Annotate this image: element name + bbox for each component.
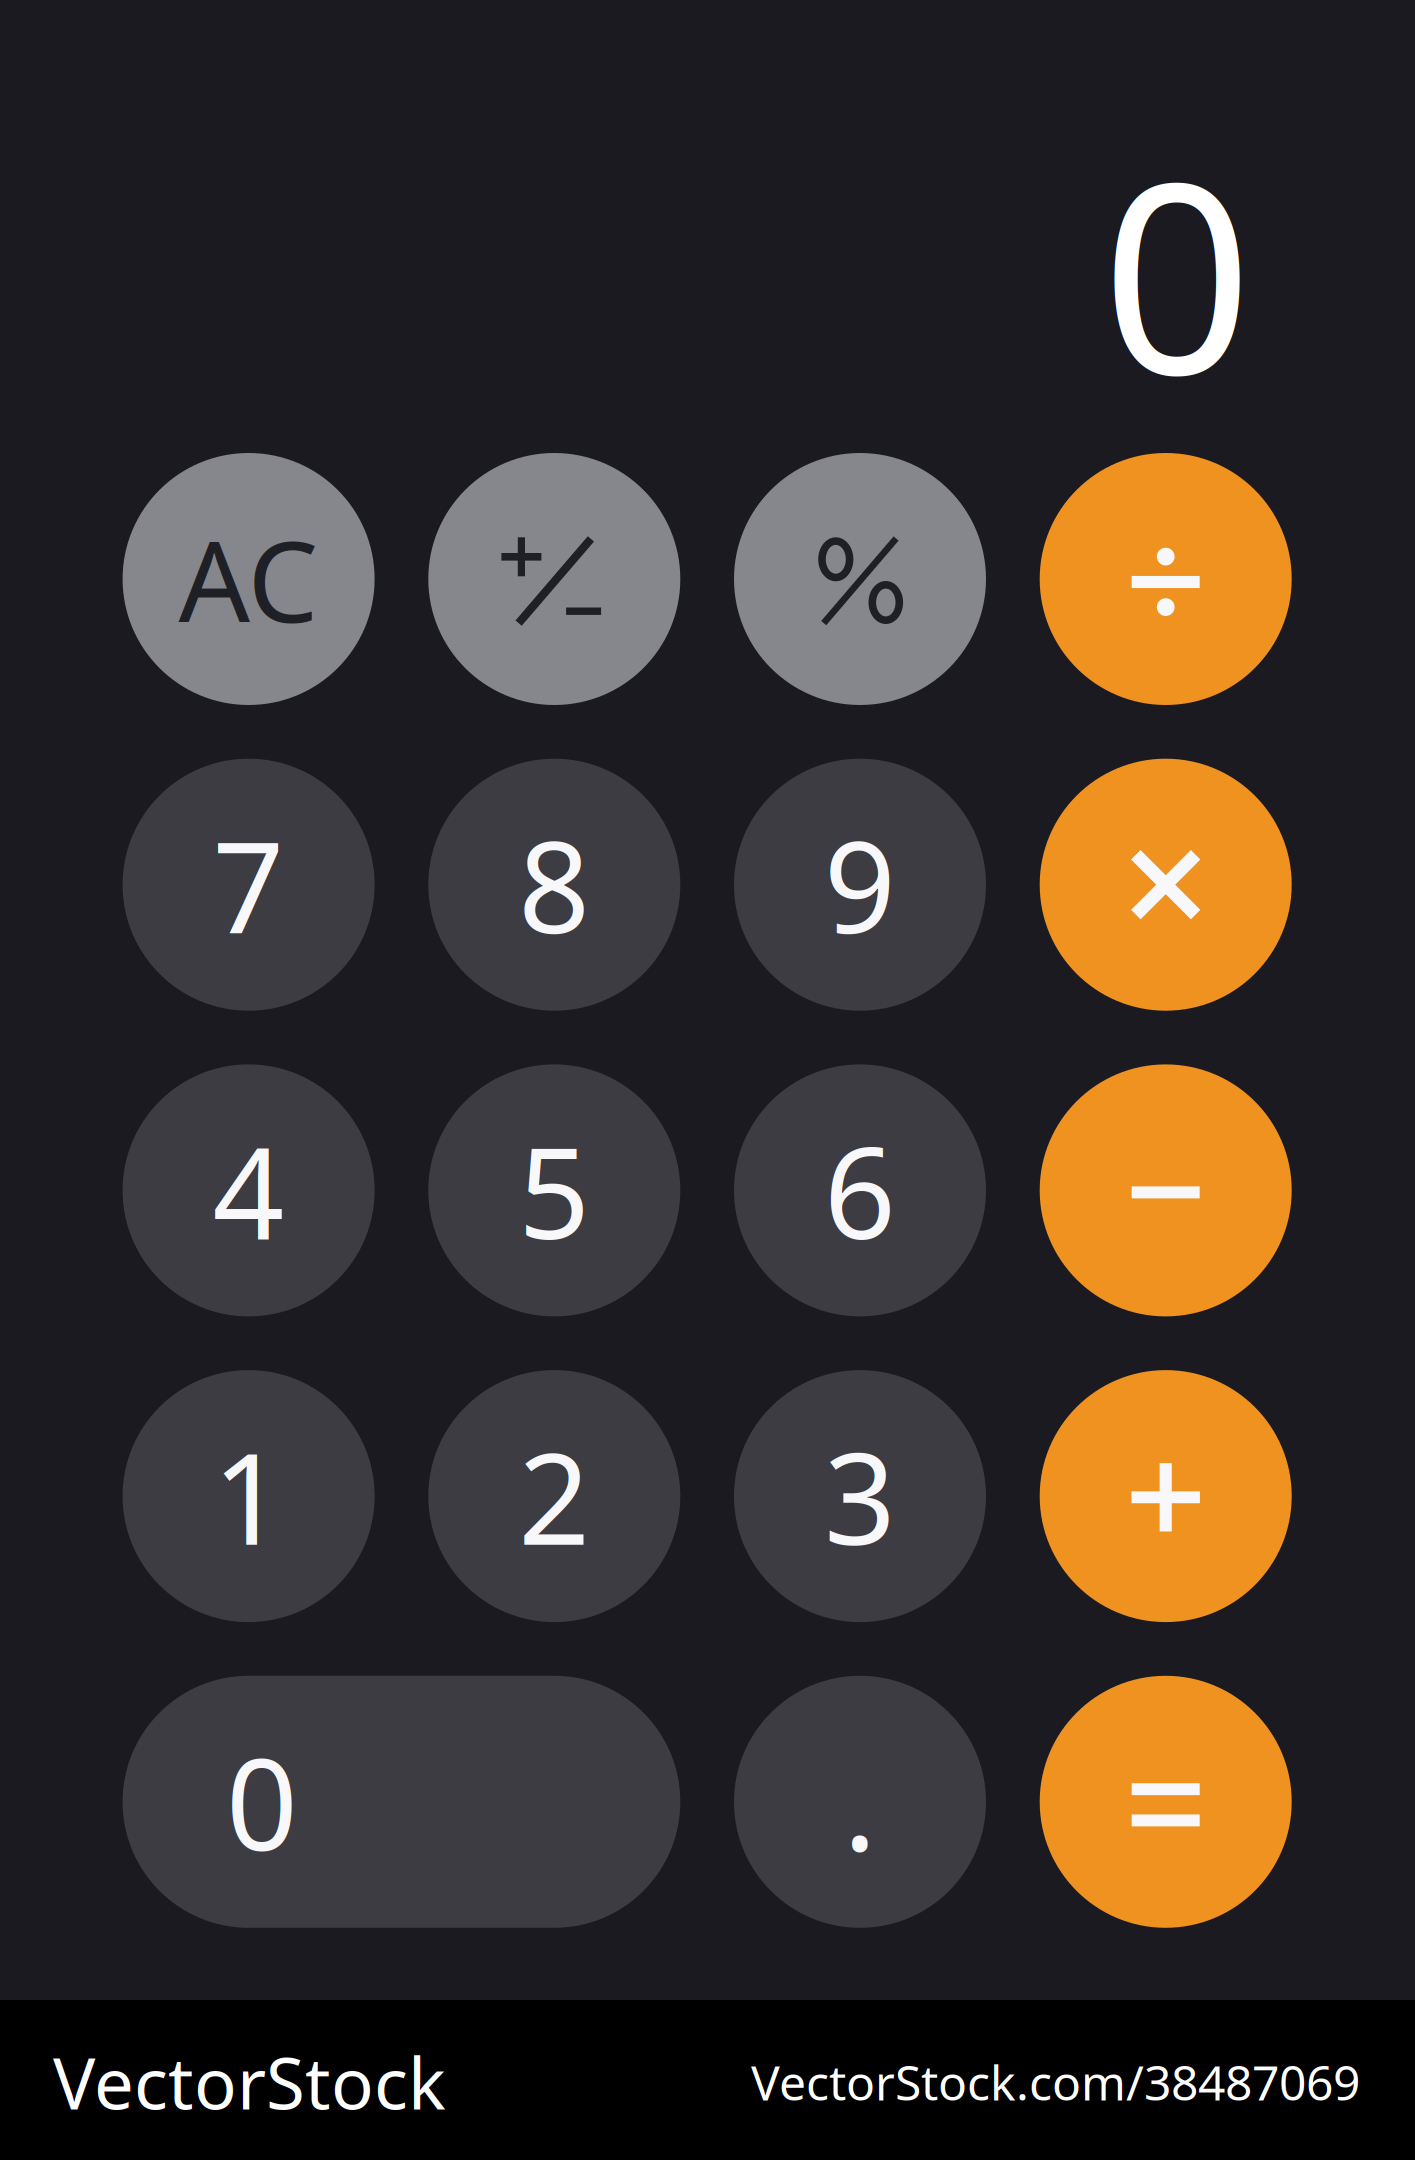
button[interactable]: Multiply	[1040, 759, 1292, 1011]
staticText: 3	[824, 1413, 896, 1579]
button[interactable]: 7	[123, 759, 375, 1011]
staticText: 7	[213, 801, 285, 968]
staticText: 5	[518, 1107, 590, 1274]
button[interactable]: 9	[734, 759, 986, 1011]
button[interactable]: .	[734, 1676, 986, 1928]
button[interactable]: 4	[123, 1064, 375, 1316]
staticText: VectorStock	[53, 2035, 446, 2129]
button[interactable]: Plus	[1040, 1370, 1292, 1622]
staticText: 9	[824, 801, 896, 968]
button[interactable]: 0	[123, 1676, 680, 1928]
staticText: AC	[179, 505, 319, 653]
staticText: 6	[824, 1107, 896, 1274]
button[interactable]: 8	[428, 759, 680, 1011]
button[interactable]: Plus Minus	[428, 453, 680, 705]
button[interactable]: 1	[123, 1370, 375, 1622]
button[interactable]: 6	[734, 1064, 986, 1316]
staticText: 4	[213, 1107, 285, 1274]
button[interactable]: 3	[734, 1370, 986, 1622]
button[interactable]: 2	[428, 1370, 680, 1622]
button[interactable]: Percent	[734, 453, 986, 705]
button[interactable]: AC	[123, 453, 375, 705]
staticText: 0	[1101, 96, 1252, 446]
staticText: 0	[226, 1719, 298, 1885]
staticText: VectorStock.com/38487069	[751, 2050, 1360, 2114]
button[interactable]: Equals	[1040, 1676, 1292, 1928]
staticText: .	[843, 1719, 877, 1885]
staticText: 1	[213, 1413, 285, 1579]
staticText: 8	[518, 801, 590, 968]
button[interactable]: 5	[428, 1064, 680, 1316]
button[interactable]: Minus	[1040, 1064, 1292, 1316]
button[interactable]: Divide	[1040, 453, 1292, 705]
staticText: 2	[518, 1413, 590, 1579]
